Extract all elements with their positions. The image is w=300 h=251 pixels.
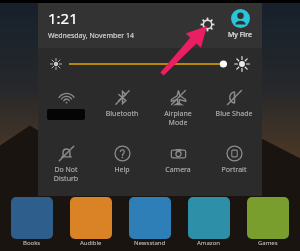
button[interactable]: My Fire <box>226 9 254 40</box>
staticText: Portrait <box>208 165 260 175</box>
button[interactable]: Blue Shade <box>206 86 262 122</box>
button[interactable]: Airplane Mode <box>150 86 206 130</box>
staticText: 1:21 <box>48 8 78 28</box>
staticText: Newsstand <box>134 239 166 247</box>
staticText: My Fire <box>228 30 252 40</box>
button[interactable]: Help <box>94 142 150 178</box>
other: Airplane Mode <box>170 89 187 106</box>
staticText: Games <box>258 239 278 247</box>
staticText: Camera <box>152 165 204 175</box>
button[interactable]: Brightness <box>69 54 227 74</box>
other: Camera <box>170 145 187 162</box>
other: Portrait <box>226 145 243 162</box>
staticText: Blue Shade <box>208 109 260 119</box>
staticText: Audible <box>80 239 102 247</box>
button[interactable]: Amazon <box>184 197 233 247</box>
button[interactable]: Games <box>243 197 292 247</box>
button[interactable]: Do Not Disturb <box>38 142 94 186</box>
staticText: Wednesday, November 14 <box>48 31 134 41</box>
button[interactable]: Portrait <box>206 142 262 178</box>
staticText: Bluetooth <box>96 109 148 119</box>
other: Wi-Fi <box>58 89 75 106</box>
staticText: Books <box>23 239 41 247</box>
button[interactable]: Camera <box>150 142 206 178</box>
staticText: Help <box>96 165 148 175</box>
other: Do Not Disturb <box>58 145 75 162</box>
button[interactable]: Settings <box>194 11 220 37</box>
other: Help <box>114 145 131 162</box>
button[interactable]: Books <box>8 197 56 247</box>
staticText: Airplane Mode <box>152 109 204 127</box>
button[interactable]: Wi-Fi <box>38 86 94 123</box>
button[interactable]: Audible <box>66 197 115 247</box>
staticText: Amazon <box>197 239 220 247</box>
other: Bluetooth <box>114 89 131 106</box>
button[interactable]: Bluetooth <box>94 86 150 122</box>
button[interactable]: Newsstand <box>125 197 174 247</box>
other: Blue Shade <box>226 89 243 106</box>
staticText: Do Not Disturb <box>40 165 92 183</box>
